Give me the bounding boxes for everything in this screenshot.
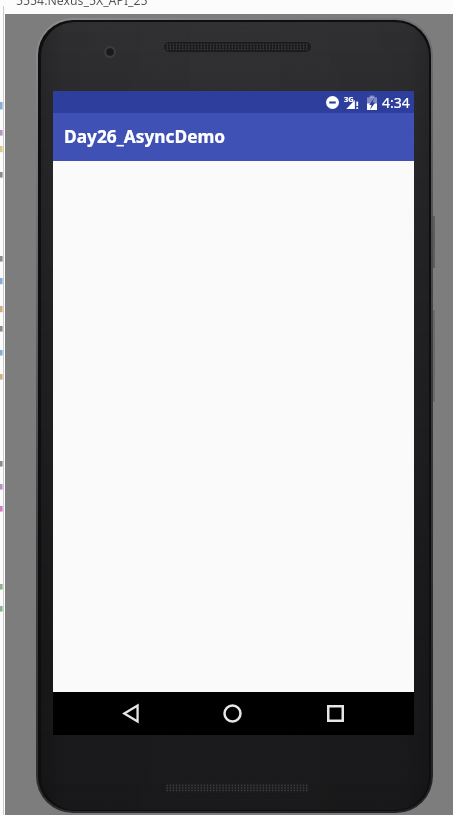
staticText: Day26_AsyncDemo [64,125,226,149]
staticText: 4:34 [382,93,410,112]
staticText: 5554:Nexus_5X_API_25 [16,0,148,9]
staticText: 3G [344,94,354,104]
button[interactable]: Recent apps [314,692,357,735]
button[interactable]: Back [110,692,153,735]
button[interactable]: Home [211,692,254,735]
